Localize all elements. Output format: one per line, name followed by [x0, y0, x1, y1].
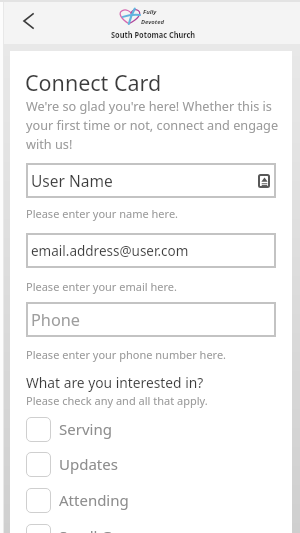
staticText: Connect Card — [25, 68, 162, 97]
staticText: Please check any and all that apply. — [26, 393, 208, 408]
staticText: Attending — [59, 490, 129, 510]
staticText: Phone — [31, 309, 81, 331]
staticText: Fully — [143, 8, 157, 16]
button[interactable]: Serving — [26, 414, 276, 444]
button[interactable]: Attending — [26, 485, 276, 515]
staticText: Small Group — [59, 526, 146, 533]
button[interactable]: Small Group — [26, 521, 276, 533]
staticText: Updates — [59, 454, 118, 474]
button[interactable]: email.address@user.com — [26, 233, 276, 268]
staticText: User Name — [31, 170, 113, 191]
staticText: Devoted — [141, 18, 165, 25]
button[interactable]: Updates — [26, 449, 276, 479]
staticText: Please enter your phone number here. — [26, 347, 227, 362]
button[interactable]: Back — [15, 7, 43, 35]
staticText: South Potomac Church — [111, 28, 195, 41]
staticText: Please enter your email here. — [26, 279, 177, 294]
staticText: Serving — [59, 419, 112, 439]
staticText: We're so glad you're here! Whether this … — [26, 96, 282, 153]
button[interactable]: User Name — [26, 163, 276, 198]
staticText: What are you interested in? — [26, 373, 204, 392]
staticText: email.address@user.com — [31, 242, 189, 260]
button[interactable]: Phone — [26, 302, 276, 337]
staticText: Please enter your name here. — [26, 206, 179, 221]
